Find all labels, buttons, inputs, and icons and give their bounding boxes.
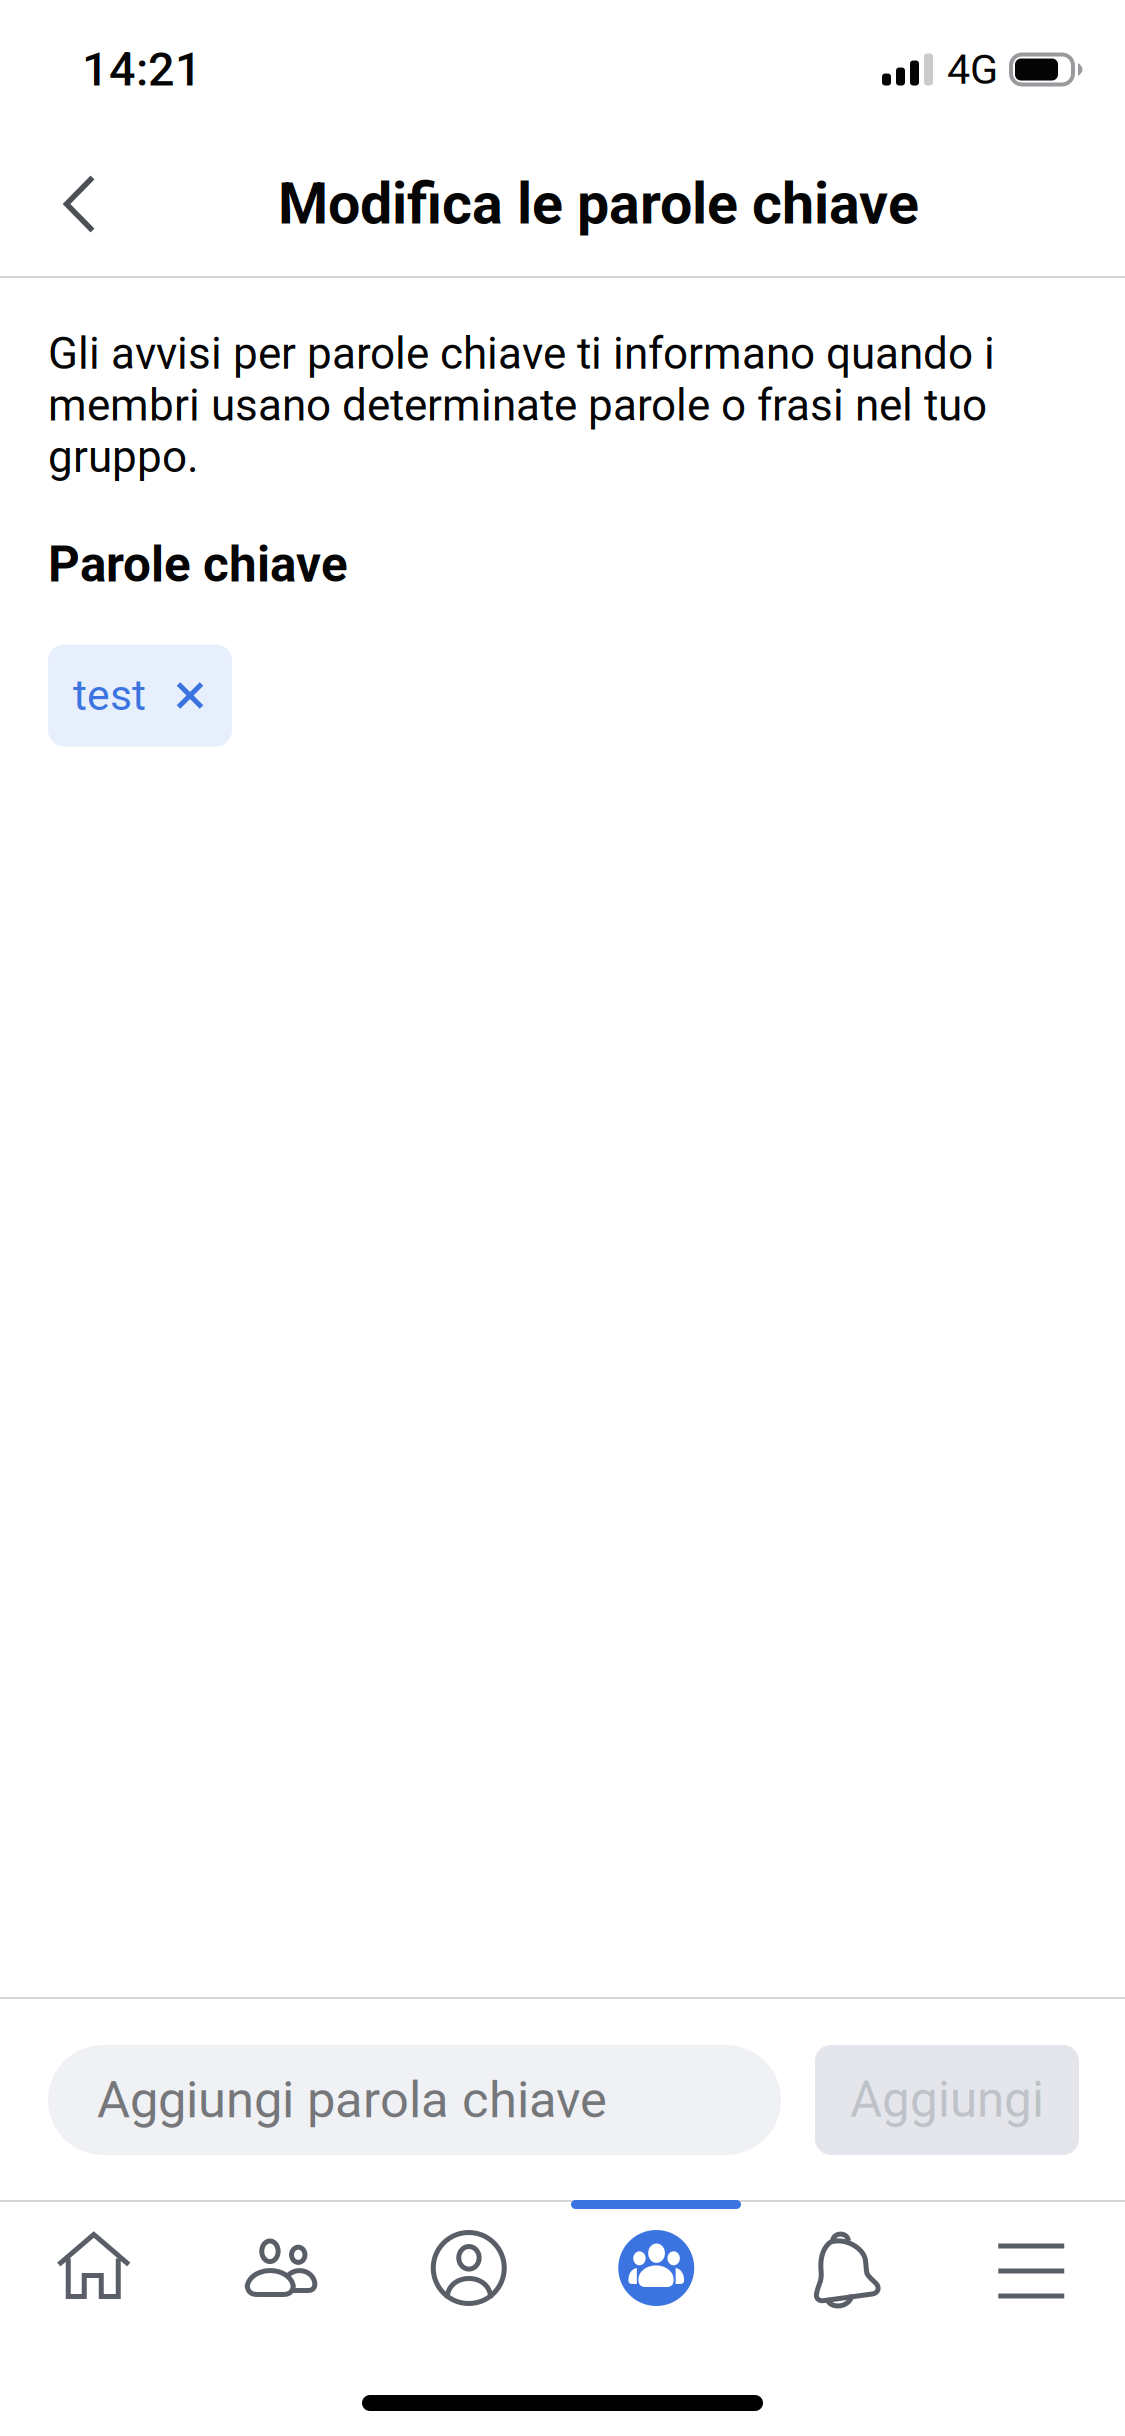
staticText: Aggiungi parola chiave <box>97 2070 607 2130</box>
button[interactable]: Profilo <box>375 2209 562 2327</box>
staticText: Modifica le parole chiave <box>278 170 919 238</box>
staticText: Aggiungi <box>850 2071 1044 2129</box>
staticText: Parole chiave <box>48 536 348 593</box>
button[interactable]: Home <box>0 2209 187 2327</box>
button[interactable]: Rimuovi parola chiave test <box>48 644 232 746</box>
button[interactable]: Amici <box>187 2209 375 2327</box>
button[interactable]: Menu <box>937 2209 1125 2327</box>
staticText: test <box>73 670 146 720</box>
staticText: Gli avvisi per parole chiave ti informan… <box>48 328 995 483</box>
button[interactable]: Indietro <box>0 145 135 263</box>
button[interactable]: Aggiungi <box>815 2045 1079 2155</box>
button[interactable]: Aggiungi parola chiave <box>48 2045 781 2155</box>
button[interactable]: Gruppi <box>562 2209 750 2327</box>
staticText: 4G <box>947 45 998 94</box>
button[interactable]: Notifiche <box>750 2209 937 2327</box>
staticText: 14:21 <box>82 42 202 97</box>
